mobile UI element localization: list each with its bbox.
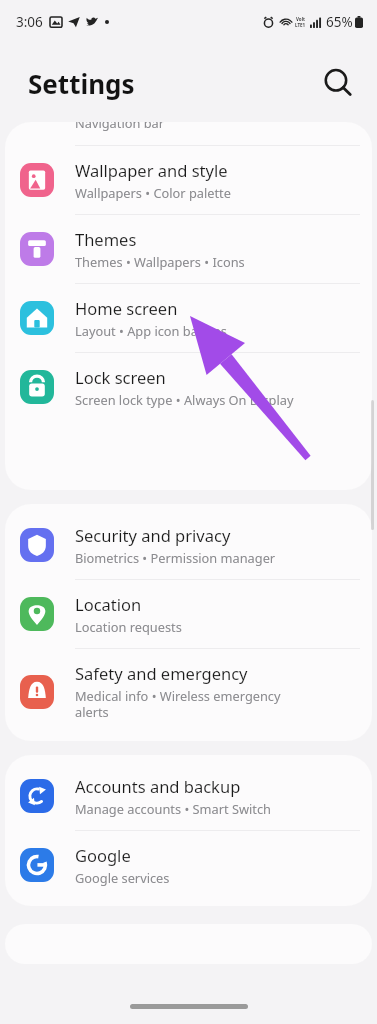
button[interactable]: Google [5, 831, 372, 899]
staticText: Safety and emergency [75, 662, 248, 684]
button[interactable]: Lock screen [5, 353, 372, 421]
staticText: LTE1 [295, 22, 306, 28]
button[interactable]: Home screen [5, 284, 372, 352]
staticText: Google services [75, 869, 170, 886]
staticText: Biometrics • Permission manager [75, 549, 276, 566]
staticText: 3:06 [16, 13, 43, 31]
staticText: Screen lock type • Always On Display [75, 391, 294, 408]
button[interactable]: Security and privacy [5, 511, 372, 579]
button[interactable]: Location [5, 580, 372, 648]
staticText: Wallpaper and style [75, 159, 228, 181]
staticText: Layout • App icon badges [75, 322, 227, 339]
button[interactable]: Safety and emergency [5, 649, 372, 734]
staticText: Wallpapers • Color palette [75, 184, 231, 201]
staticText: Security and privacy [75, 524, 231, 546]
button[interactable]: Themes [5, 215, 372, 283]
staticText: Manage accounts • Smart Switch [75, 800, 271, 817]
staticText: Home screen [75, 297, 178, 319]
staticText: Accounts and backup [75, 775, 241, 797]
staticText: Volt [296, 16, 305, 22]
staticText: Location requests [75, 618, 182, 635]
staticText: Themes • Wallpapers • Icons [75, 253, 245, 270]
staticText: Medical info • Wireless emergency alerts [75, 687, 281, 721]
staticText: Settings [28, 66, 135, 101]
button[interactable]: Wallpaper and style [5, 146, 372, 214]
button[interactable]: Display [5, 122, 372, 145]
staticText: Brightness • Eye comfort shield • Naviga… [75, 122, 271, 132]
button[interactable]: Accounts and backup [5, 762, 372, 830]
button[interactable]: Search [321, 66, 355, 100]
staticText: Lock screen [75, 366, 166, 388]
staticText: Themes [75, 228, 137, 250]
staticText: Google [75, 844, 131, 866]
staticText: 65% [326, 13, 353, 31]
staticText: Location [75, 593, 142, 615]
